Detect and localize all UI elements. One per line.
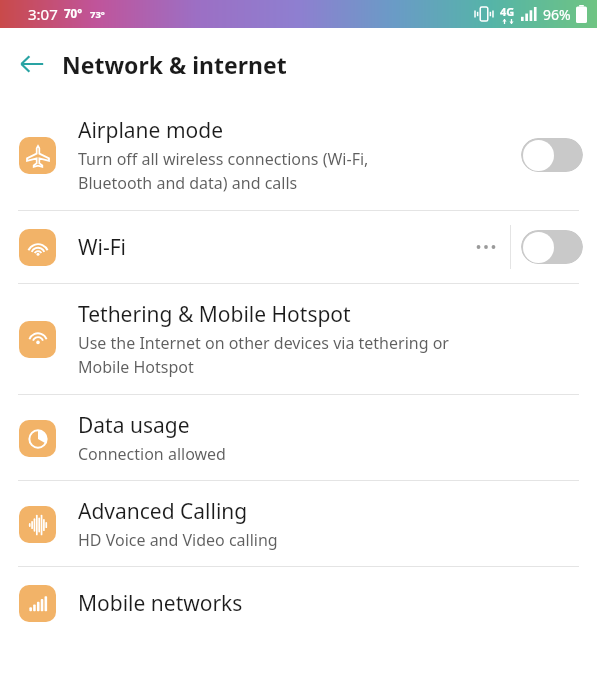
button[interactable]: Airplane mode: [0, 100, 597, 210]
button[interactable]: Back: [10, 42, 54, 86]
staticText: Mobile networks: [78, 589, 243, 618]
staticText: Wi-Fi: [78, 233, 127, 262]
staticText: Tethering & Mobile Hotspot: [78, 300, 351, 329]
staticText: 73°: [90, 8, 105, 21]
button[interactable]: More options: [466, 227, 506, 267]
staticText: 70°: [64, 6, 83, 22]
button[interactable]: Advanced Calling: [0, 481, 597, 566]
staticText: Connection allowed: [78, 443, 226, 465]
button[interactable]: Mobile networks: [0, 567, 597, 639]
button[interactable]: Tethering & Mobile Hotspot: [0, 284, 597, 394]
button[interactable]: Toggle: [521, 230, 583, 264]
staticText: Network & internet: [62, 49, 287, 80]
button[interactable]: Wi-Fi: [0, 211, 597, 283]
staticText: 4G: [500, 4, 515, 19]
button[interactable]: Toggle: [521, 138, 583, 172]
staticText: 96%: [543, 5, 571, 24]
staticText: 3:07: [28, 4, 58, 24]
staticText: Use the Internet on other devices via te…: [78, 332, 449, 378]
staticText: Turn off all wireless connections (Wi-Fi…: [78, 148, 369, 194]
staticText: Data usage: [78, 411, 190, 440]
staticText: HD Voice and Video calling: [78, 529, 278, 551]
staticText: Advanced Calling: [78, 497, 248, 526]
button[interactable]: Data usage: [0, 395, 597, 480]
staticText: Airplane mode: [78, 116, 224, 145]
